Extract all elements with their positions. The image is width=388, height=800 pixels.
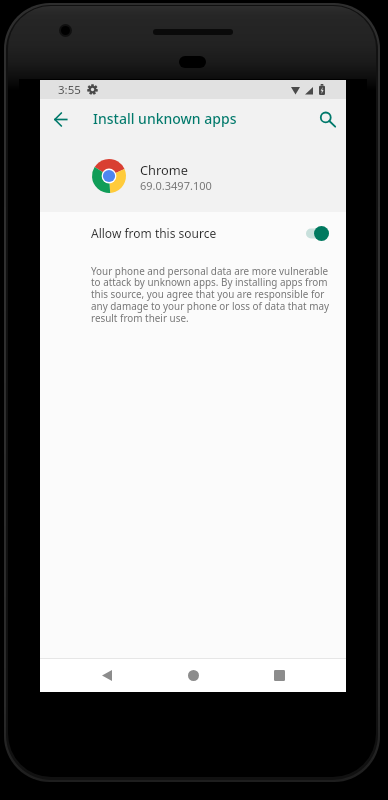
button[interactable]: Navigate up (40, 99, 83, 144)
staticText: Chrome (140, 161, 188, 178)
button[interactable]: Allow from this source (40, 212, 346, 256)
staticText: 3:55 (58, 82, 81, 98)
staticText: 69.0.3497.100 (140, 178, 212, 193)
staticText: Your phone and personal data are more vu… (91, 264, 334, 325)
button[interactable]: Back (87, 659, 127, 692)
button[interactable]: Search (306, 99, 346, 144)
button[interactable]: Recent apps (259, 659, 299, 692)
button[interactable]: Home (173, 659, 213, 692)
staticText: Install unknown apps (93, 109, 237, 128)
staticText: Allow from this source (91, 225, 217, 241)
